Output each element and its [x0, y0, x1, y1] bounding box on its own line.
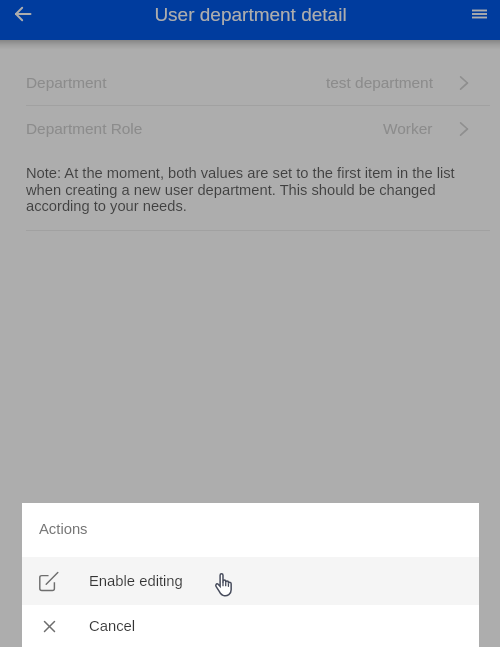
staticText: Enable editing [89, 573, 183, 590]
staticText: Department Role [26, 120, 143, 137]
button[interactable]: Department [0, 60, 500, 105]
button[interactable]: Department Role [0, 106, 500, 151]
staticText: Department [26, 74, 107, 91]
staticText: User department detail [154, 4, 347, 25]
staticText: Cancel [89, 618, 136, 635]
staticText: test department [326, 74, 433, 91]
button[interactable]: Enable editing [22, 557, 479, 605]
staticText: Actions [39, 521, 88, 538]
staticText: Worker [383, 120, 433, 137]
staticText: Note: At the moment, both values are set… [26, 165, 466, 214]
button[interactable]: Menu [465, 0, 493, 28]
button[interactable]: Cancel [22, 605, 479, 647]
button[interactable]: Back [9, 0, 37, 28]
